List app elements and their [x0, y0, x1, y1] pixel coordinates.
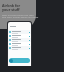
button[interactable]: Primary action	[9, 58, 30, 63]
button[interactable]	[8, 46, 31, 50]
button[interactable]	[8, 30, 31, 34]
staticText: Airbnb for your stuff	[2, 3, 21, 12]
button[interactable]	[8, 34, 31, 38]
button[interactable]	[8, 38, 31, 42]
staticText: Rent out the things you own and earn mon…	[2, 13, 39, 19]
button[interactable]	[8, 42, 31, 46]
